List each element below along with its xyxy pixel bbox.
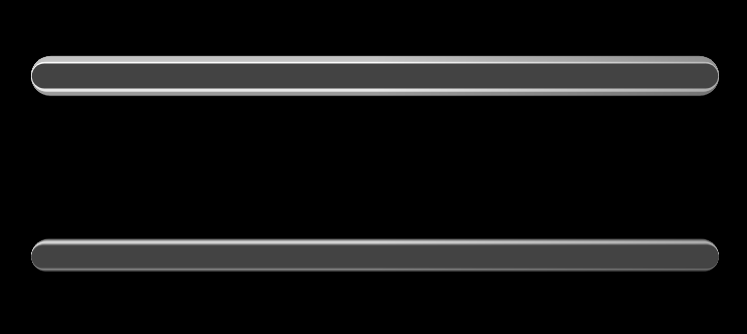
button[interactable]: Bottom capsule bbox=[31, 245, 718, 268]
button[interactable]: Top capsule bbox=[31, 63, 718, 89]
